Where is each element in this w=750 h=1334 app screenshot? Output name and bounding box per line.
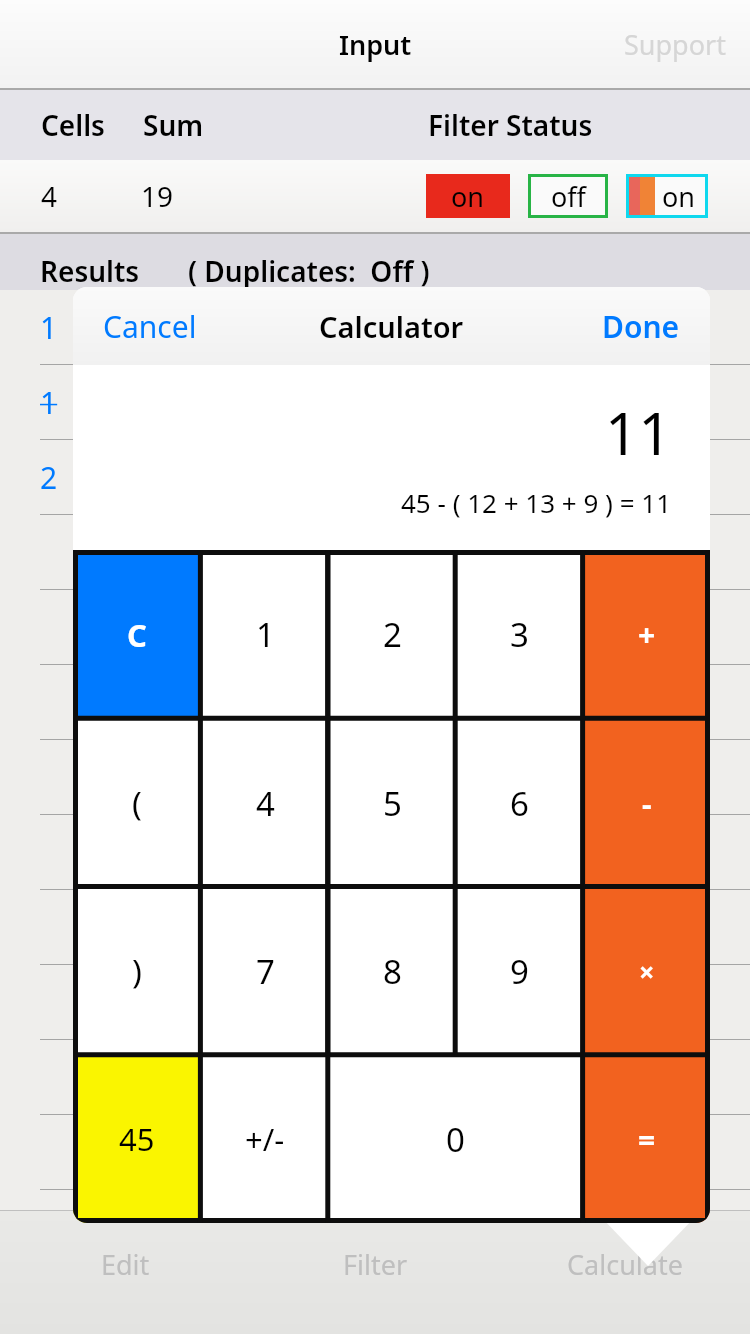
button[interactable]: Filter [250, 1211, 500, 1334]
staticText: Edit [101, 1246, 150, 1283]
button[interactable]: Support [620, 22, 730, 67]
button[interactable]: 8 [329, 887, 456, 1055]
staticText: 1 [40, 307, 58, 348]
staticText: Cells [41, 106, 105, 144]
staticText: off [551, 178, 586, 215]
button[interactable]: on [426, 174, 510, 218]
staticText: 1 [256, 612, 275, 657]
button[interactable]: off [528, 174, 608, 218]
staticText: 5 [383, 781, 402, 826]
staticText: 4 [256, 781, 275, 826]
staticText: on [451, 178, 485, 215]
staticText: Calculate [567, 1246, 683, 1283]
staticText: 7 [256, 949, 275, 994]
staticText: Calculator [319, 307, 464, 346]
staticText: Done [602, 306, 680, 347]
staticText: ( [132, 781, 142, 826]
staticText: Support [624, 26, 726, 63]
button[interactable]: 0 [328, 1055, 583, 1223]
button[interactable]: C [73, 550, 201, 719]
button[interactable]: ) [73, 887, 201, 1055]
button[interactable]: 2 [0, 440, 750, 515]
staticText: 11 [605, 393, 672, 472]
staticText: Input [339, 26, 412, 63]
button[interactable]: 6 [456, 719, 583, 887]
staticText: 3 [510, 612, 529, 657]
staticText: 2 [40, 457, 58, 498]
button[interactable]: 4 [201, 719, 329, 887]
button[interactable]: Calculate [500, 1211, 750, 1334]
staticText: 45 - ( 12 + 13 + 9 ) = 11 [401, 485, 672, 520]
staticText: + [638, 614, 656, 655]
button[interactable]: 45 [73, 1055, 201, 1223]
staticText: 2 [383, 612, 402, 657]
button[interactable]: on [626, 174, 708, 218]
button[interactable]: 1 [0, 290, 750, 365]
button[interactable]: 9 [456, 887, 583, 1055]
staticText: 1 [40, 382, 58, 423]
button[interactable]: 3 [456, 550, 583, 719]
button[interactable]: +/- [201, 1055, 328, 1223]
button[interactable]: ( [73, 719, 201, 887]
button[interactable]: × [583, 887, 710, 1055]
staticText: 6 [510, 781, 529, 826]
staticText: - [642, 783, 652, 824]
button[interactable]: Done [598, 300, 684, 353]
button[interactable]: Edit [0, 1211, 250, 1334]
staticText: Filter Status [428, 106, 593, 144]
staticText: on [662, 178, 696, 215]
staticText: 0 [446, 1117, 465, 1162]
staticText: 8 [383, 949, 402, 994]
button[interactable]: 1 [201, 550, 329, 719]
button[interactable]: Cancel [99, 300, 201, 353]
button[interactable]: = [583, 1055, 710, 1223]
staticText: 4 [41, 177, 58, 215]
button[interactable]: 5 [329, 719, 456, 887]
staticText: 19 [141, 177, 174, 215]
staticText: ( Duplicates: Off ) [188, 252, 430, 290]
button[interactable]: - [583, 719, 710, 887]
button[interactable]: 7 [201, 887, 329, 1055]
staticText: 9 [510, 949, 529, 994]
staticText: C [127, 614, 147, 656]
staticText: Results [40, 252, 140, 290]
button[interactable]: + [583, 550, 710, 719]
staticText: Filter [343, 1246, 408, 1283]
staticText: × [639, 953, 655, 990]
staticText: Cancel [103, 306, 197, 347]
staticText: 45 [119, 1118, 155, 1160]
staticText: +/- [245, 1118, 285, 1160]
staticText: Sum [143, 106, 204, 144]
button[interactable]: 2 [329, 550, 456, 719]
staticText: ) [132, 949, 142, 994]
button[interactable]: 1 [0, 365, 750, 440]
staticText: = [638, 1119, 656, 1160]
